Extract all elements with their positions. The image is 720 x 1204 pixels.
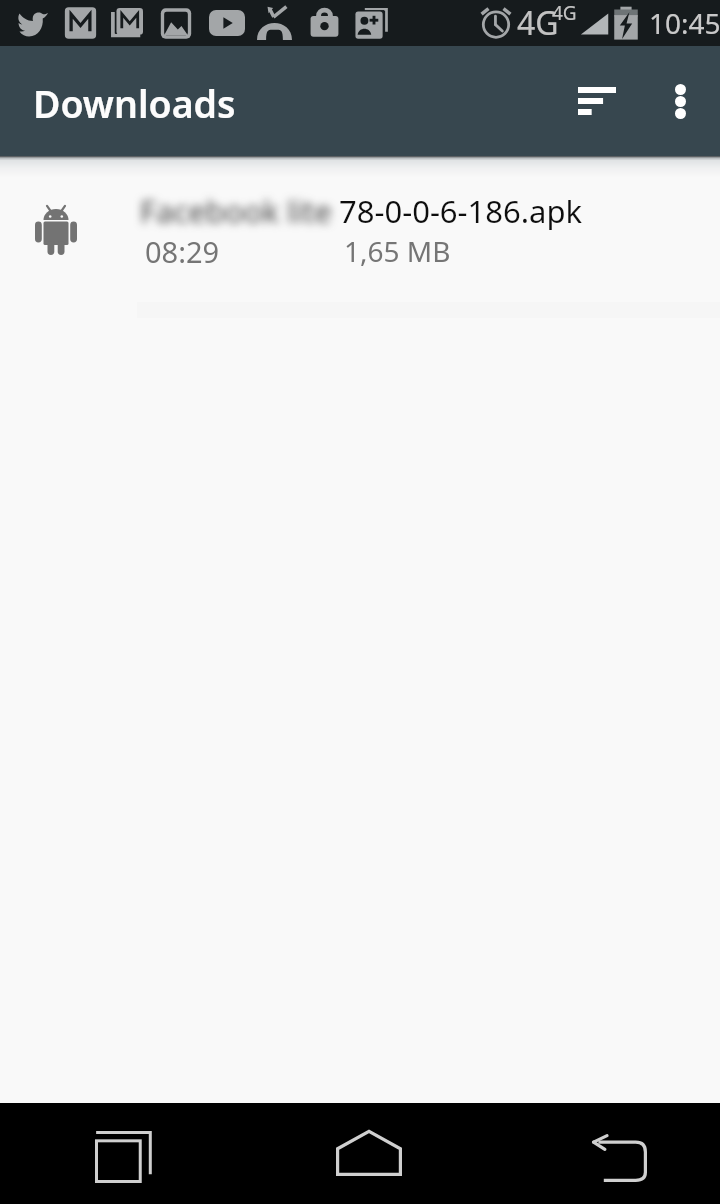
staticText: Downloads: [33, 78, 236, 129]
staticText: 08:29: [145, 232, 344, 271]
button[interactable]: Home: [240, 1103, 480, 1204]
staticText: 10:45: [649, 4, 720, 42]
button[interactable]: More options: [640, 46, 720, 156]
button[interactable]: Facebook lite: [0, 156, 720, 302]
button[interactable]: Sort: [554, 46, 640, 156]
staticText: 4G: [517, 1, 559, 45]
staticText: 1,65 MB: [344, 232, 451, 270]
staticText: 78-0-0-6-186.apk: [339, 190, 583, 232]
staticText: Facebook lite: [140, 190, 348, 232]
button[interactable]: Recents: [0, 1103, 240, 1204]
button[interactable]: Back: [480, 1103, 720, 1204]
staticText: 4G: [552, 0, 577, 26]
